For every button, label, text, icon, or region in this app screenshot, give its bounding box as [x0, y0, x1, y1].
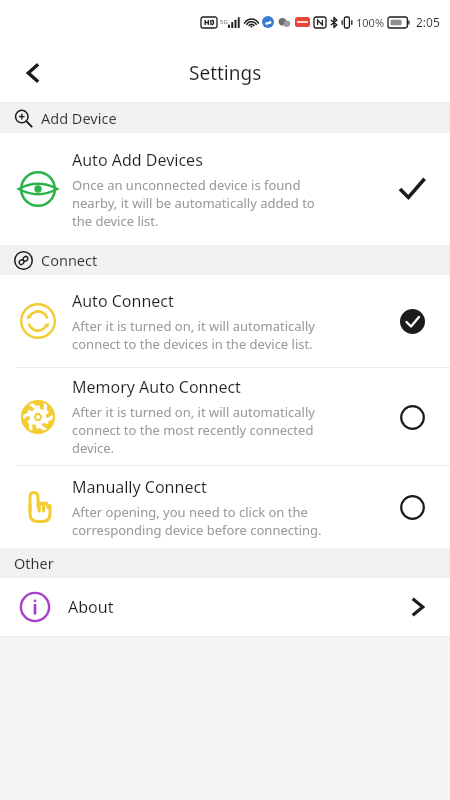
button[interactable]: Auto Connect selected	[392, 301, 432, 341]
staticText: After opening, you need to click on the …	[72, 503, 322, 539]
staticText: After it is turned on, it will automatic…	[72, 403, 315, 457]
staticText: Auto Add Devices	[72, 149, 203, 171]
staticText: Add Device	[41, 108, 117, 128]
button[interactable]: About	[0, 578, 450, 636]
button[interactable]: Auto Add Devices	[0, 133, 450, 245]
staticText: Manually Connect	[72, 476, 207, 498]
staticText: Settings	[189, 60, 262, 86]
other: Open About	[402, 592, 432, 622]
staticText: About	[68, 596, 114, 618]
staticText: Auto Connect	[72, 290, 174, 312]
button[interactable]: Back	[12, 51, 56, 95]
staticText: 2:05	[416, 14, 440, 30]
staticText: After it is turned on, it will automatic…	[72, 317, 315, 353]
button[interactable]: Manually Connect	[0, 466, 450, 548]
staticText: 100%	[356, 15, 385, 30]
staticText: Memory Auto Connect	[72, 376, 241, 398]
button[interactable]: Auto Add Devices enabled	[392, 169, 432, 209]
button[interactable]: Not selected	[392, 487, 432, 527]
button[interactable]: Auto Connect	[0, 275, 450, 367]
button[interactable]: Memory Auto Connect	[0, 368, 450, 465]
staticText: Other	[14, 553, 54, 573]
button[interactable]: Not selected	[392, 397, 432, 437]
staticText: Connect	[41, 250, 98, 270]
staticText: Once an unconnected device is found near…	[72, 176, 315, 230]
staticText: 5G	[220, 18, 228, 26]
